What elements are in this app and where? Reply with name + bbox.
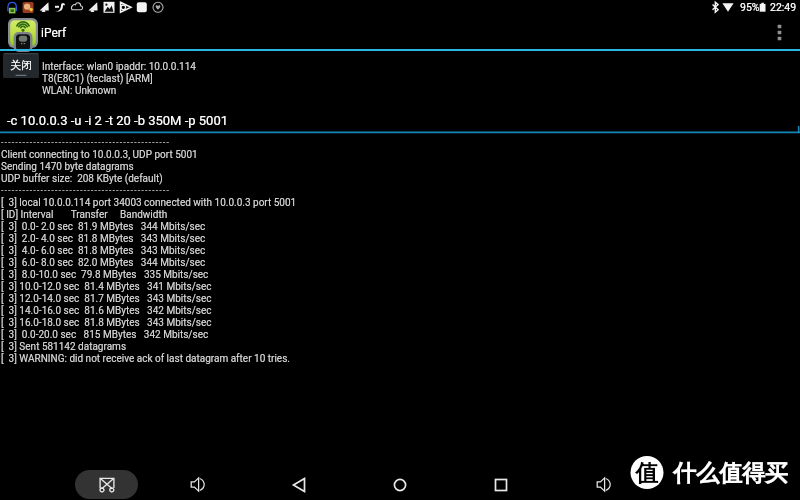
staticText: 22:49 [770,1,797,13]
staticText: -c 10.0.0.3 -u -i 2 -t 20 -b 350M -p 500… [7,113,229,128]
staticText: Interface: wlan0 ipaddr: 10.0.0.114 [42,61,196,73]
staticText: [ 3] 2.0- 4.0 sec 81.8 MBytes 343 Mbits/… [1,233,206,245]
staticText: [ 3] WARNING: did not receive ack of las… [1,353,290,365]
staticText: [ 3] 0.0- 2.0 sec 81.9 MBytes 344 Mbits/… [1,221,206,233]
staticText: iPerf [41,26,67,40]
staticText: [ ID] Interval Transfer Bandwidth [1,209,168,221]
staticText: Client connecting to 10.0.0.3, UDP port … [1,149,198,161]
button[interactable]: Volume up [586,468,620,500]
button[interactable]: Back [282,468,316,500]
staticText: T8(E8C1) (teclast) [ARM] [42,73,153,85]
staticText: [ 3] 6.0- 8.0 sec 82.0 MBytes 344 Mbits/… [1,257,206,269]
staticText: [ 3] 0.0-20.0 sec 815 MBytes 342 Mbits/s… [1,329,209,341]
staticText: 95% [740,1,760,13]
staticText: [ 3] local 10.0.0.114 port 34003 connect… [1,197,297,209]
button[interactable]: Screenshot [75,470,138,499]
staticText: [ 3] 14.0-16.0 sec 81.6 MBytes 342 Mbits… [1,305,212,317]
staticText: UDP buffer size: 208 KByte (default) [1,173,163,185]
staticText: [ 3] 8.0-10.0 sec 79.8 MBytes 335 Mbits/… [1,269,209,281]
staticText: [ 3] 16.0-18.0 sec 81.8 MBytes 343 Mbits… [1,317,212,329]
staticText: [ 3] 4.0- 6.0 sec 81.8 MBytes 343 Mbits/… [1,245,206,257]
staticText: [ 3] Sent 581142 datagrams [1,341,127,353]
staticText: [ 3] 10.0-12.0 sec 81.4 MBytes 341 Mbits… [1,281,212,293]
staticText: 什么值得买 [673,459,788,488]
button[interactable]: Volume down [180,468,214,500]
button[interactable]: 关闭 [3,53,39,78]
button[interactable]: More options [770,18,790,48]
button[interactable]: Recents [484,468,518,500]
staticText: 值 [635,459,658,488]
staticText: Sending 1470 byte datagrams [1,161,134,173]
button[interactable]: Home [383,468,417,500]
staticText: WLAN: Unknown [42,85,117,97]
staticText: 关闭 [10,58,32,72]
staticText: [ 3] 12.0-14.0 sec 81.7 MBytes 343 Mbits… [1,293,212,305]
